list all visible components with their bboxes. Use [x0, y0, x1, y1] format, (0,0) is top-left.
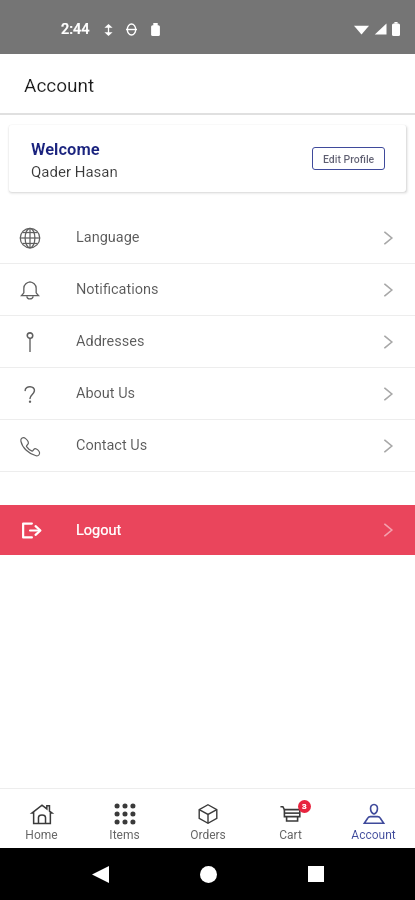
staticText: Addresses	[76, 333, 145, 350]
button[interactable]: Items	[83, 789, 166, 848]
button[interactable]: Recents	[296, 854, 336, 894]
staticText: Edit Profile	[323, 153, 375, 165]
button[interactable]: Back	[80, 854, 120, 894]
button[interactable]: Welcome	[9, 125, 406, 192]
staticText: 3	[302, 802, 307, 811]
staticText: Contact Us	[76, 437, 148, 454]
staticText: Logout	[76, 522, 122, 539]
button[interactable]: 3	[249, 789, 332, 848]
button[interactable]: Home	[0, 789, 83, 848]
button[interactable]: Orders	[166, 789, 249, 848]
staticText: Home	[25, 828, 58, 840]
staticText: About Us	[76, 385, 136, 402]
staticText: Cart	[279, 828, 302, 840]
button[interactable]: About Us	[0, 368, 415, 419]
button[interactable]: Account	[332, 789, 415, 848]
staticText: Welcome	[31, 140, 100, 159]
staticText: Qader Hasan	[31, 163, 118, 181]
staticText: Items	[109, 828, 140, 840]
button[interactable]: Language	[0, 212, 415, 263]
button[interactable]: Edit Profile	[312, 147, 385, 170]
button[interactable]: Addresses	[0, 316, 415, 367]
staticText: 2:44	[61, 21, 90, 38]
staticText: Account	[24, 74, 95, 96]
button[interactable]: Contact Us	[0, 420, 415, 471]
staticText: Orders	[190, 828, 226, 840]
staticText: Language	[76, 229, 140, 246]
button[interactable]: Logout	[0, 505, 415, 555]
staticText: Account	[351, 828, 396, 840]
staticText: Notifications	[76, 281, 159, 298]
button[interactable]: Home	[188, 854, 228, 894]
button[interactable]: Notifications	[0, 264, 415, 315]
